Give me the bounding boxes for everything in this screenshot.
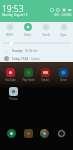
button[interactable]: Photos <box>5 87 21 101</box>
button[interactable]: Drive <box>55 68 71 82</box>
staticText: Monday, August 12 <box>2 13 28 17</box>
staticText: YouTube <box>5 78 16 82</box>
button[interactable]: Wi-Fi <box>1 23 18 37</box>
button[interactable]: Torch <box>37 23 54 37</box>
staticText: Play Store <box>22 78 35 82</box>
button[interactable]: Sync <box>55 23 72 37</box>
staticText: Update <box>31 57 40 61</box>
staticText: Data <box>24 33 31 37</box>
button[interactable] <box>0 41 73 45</box>
staticText: Gmail <box>41 78 49 82</box>
button[interactable]: WhatsApp <box>7 129 16 138</box>
button[interactable]: Chrome <box>40 129 49 138</box>
staticText: Today 19:48 <box>12 57 29 61</box>
staticText: Drive <box>60 78 67 82</box>
button[interactable]: Play Store <box>20 68 36 82</box>
button[interactable]: YouTube <box>2 68 18 82</box>
button[interactable]: Gmail <box>37 68 53 82</box>
staticText: 50% · 2.4 MB/s <box>54 13 72 17</box>
staticText: Wi-Fi <box>6 33 13 37</box>
staticText: 19:53 <box>2 3 24 15</box>
staticText: Storage <box>12 49 23 53</box>
button[interactable]: Today 19:48 <box>0 55 73 62</box>
button[interactable]: Storage <box>0 47 73 55</box>
button[interactable]: Camera <box>57 129 66 138</box>
staticText: Torch <box>42 33 50 37</box>
staticText: Sync <box>60 33 67 37</box>
button[interactable]: Messages <box>24 129 33 138</box>
staticText: Photos <box>9 97 18 101</box>
staticText: 28 GB free <box>25 49 38 53</box>
button[interactable]: Data <box>19 23 36 37</box>
